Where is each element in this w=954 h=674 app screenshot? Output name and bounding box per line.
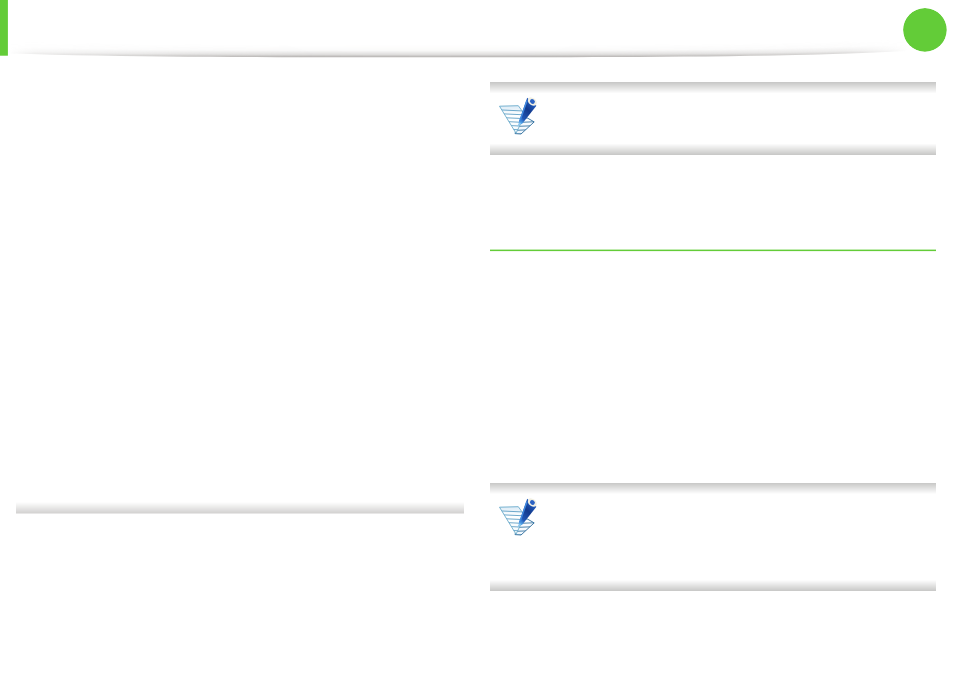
button[interactable]: Note bbox=[490, 479, 936, 595]
button[interactable]: Note bbox=[490, 78, 936, 160]
button[interactable]: Page marker bbox=[903, 8, 947, 52]
